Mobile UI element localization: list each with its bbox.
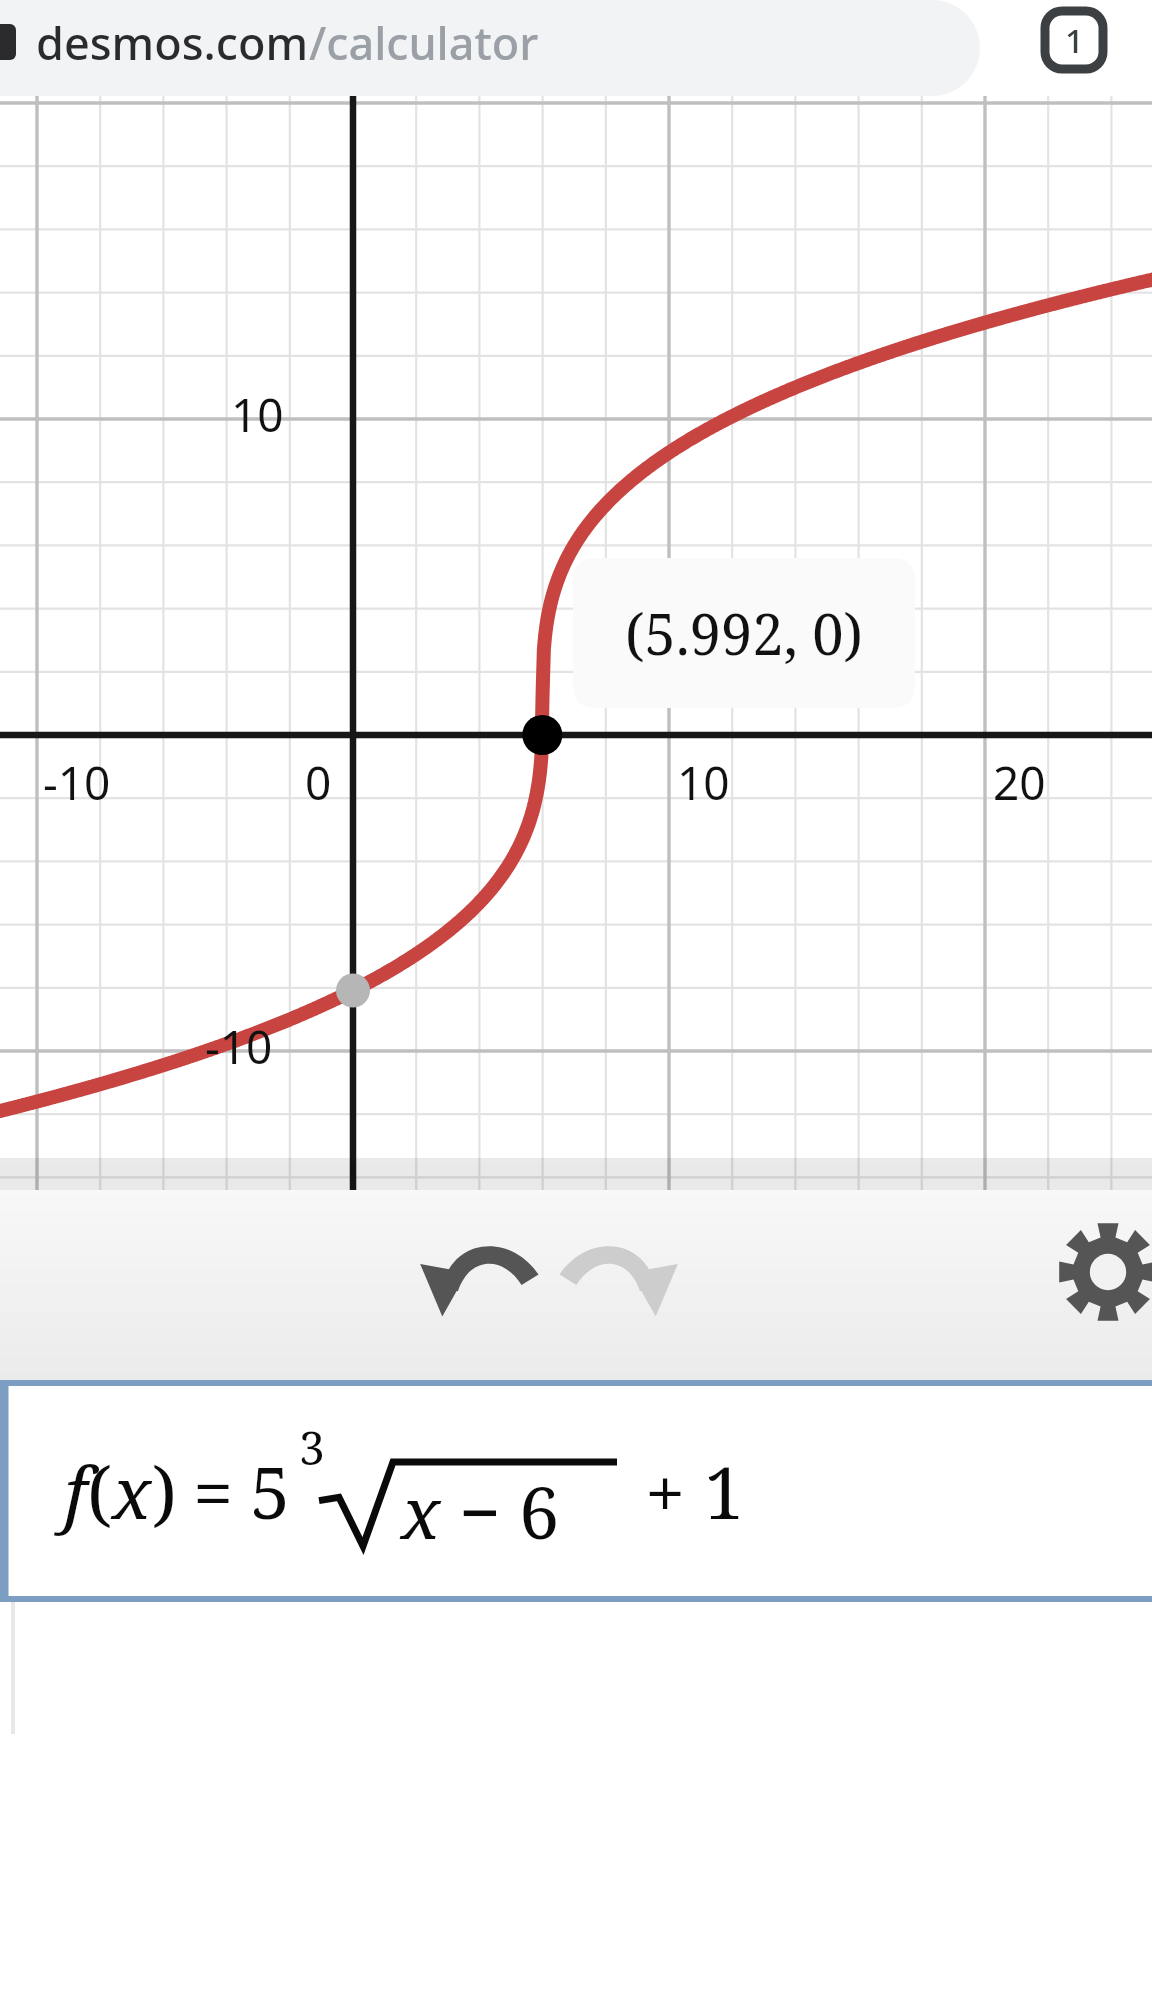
- staticText: =: [193, 1442, 234, 1540]
- button[interactable]: Tabs, 1 open: [1040, 6, 1108, 74]
- button[interactable]: f: [0, 1380, 1152, 1602]
- staticText: 1: [704, 1442, 745, 1540]
- button[interactable]: (5.992, 0): [573, 558, 915, 708]
- button[interactable]: Redo: [553, 1220, 683, 1325]
- staticText: 6: [519, 1462, 560, 1560]
- staticText: 10: [677, 751, 730, 814]
- staticText: x: [112, 1442, 152, 1540]
- staticText: 5: [250, 1442, 291, 1540]
- staticText: 3: [299, 1416, 325, 1479]
- staticText: ): [152, 1442, 177, 1540]
- button[interactable]: Settings: [1056, 1220, 1152, 1324]
- staticText: f: [64, 1442, 87, 1540]
- staticText: 10: [231, 383, 284, 446]
- button[interactable]: [0, 0, 980, 96]
- staticText: 1: [1065, 18, 1084, 63]
- staticText: x: [401, 1462, 441, 1560]
- staticText: 20: [993, 751, 1046, 814]
- staticText: /calculator: [309, 12, 539, 73]
- staticText: −: [459, 1462, 501, 1560]
- staticText: desmos.com: [36, 12, 309, 73]
- staticText: +: [645, 1442, 686, 1540]
- staticText: -10: [205, 1015, 273, 1078]
- button[interactable]: Undo: [415, 1220, 545, 1325]
- staticText: (5.992, 0): [625, 595, 863, 671]
- staticText: -10: [43, 751, 111, 814]
- staticText: (: [87, 1442, 112, 1540]
- staticText: 0: [305, 751, 332, 814]
